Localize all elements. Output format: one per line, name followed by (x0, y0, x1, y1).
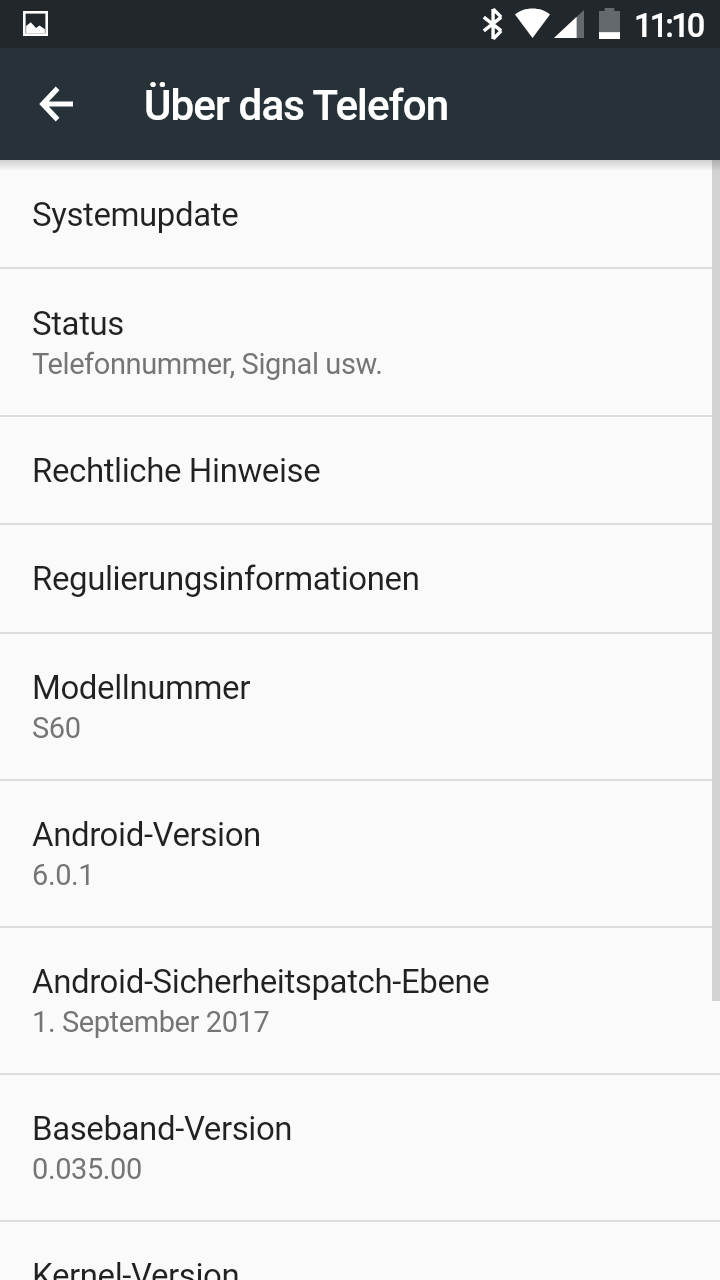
button[interactable]: Android-Sicherheitspatch-Ebene (0, 927, 720, 1074)
staticText: Rechtliche Hinweise (32, 451, 321, 490)
staticText: S60 (32, 711, 81, 745)
button[interactable]: Android-Version (0, 780, 720, 927)
staticText: Regulierungsinformationen (32, 559, 420, 598)
staticText: Android-Sicherheitspatch-Ebene (32, 962, 490, 1001)
staticText: Systemupdate (32, 195, 239, 234)
button[interactable]: Status (0, 268, 720, 416)
staticText: Telefonnummer, Signal usw. (32, 347, 383, 381)
staticText: 0.035.00 (32, 1152, 142, 1186)
staticText: 6.0.1 (32, 858, 95, 892)
button[interactable]: Baseband-Version (0, 1074, 720, 1221)
staticText: 11:10 (634, 7, 703, 45)
button[interactable]: Modellnummer (0, 633, 720, 780)
staticText: Kernel-Version (32, 1256, 240, 1280)
button[interactable]: Kernel-Version (0, 1221, 720, 1280)
staticText: Baseband-Version (32, 1109, 293, 1148)
staticText: Modellnummer (32, 668, 250, 707)
staticText: Android-Version (32, 815, 261, 854)
button[interactable]: Rechtliche Hinweise (0, 416, 720, 524)
staticText: 1. September 2017 (32, 1005, 270, 1039)
staticText: Über das Telefon (144, 81, 449, 130)
staticText: Status (32, 304, 124, 343)
button[interactable]: Zurück (24, 72, 88, 136)
button[interactable]: Systemupdate (0, 160, 720, 268)
button[interactable]: Regulierungsinformationen (0, 524, 720, 633)
